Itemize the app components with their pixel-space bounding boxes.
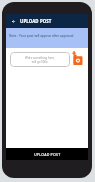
button[interactable]: Back	[7, 14, 20, 29]
staticText: UPLOAD POST	[34, 152, 61, 157]
button[interactable]: Add photo	[71, 50, 85, 66]
staticText: UPLOAD POST	[20, 18, 52, 24]
button[interactable]: UPLOAD POST	[6, 148, 88, 160]
button[interactable]: Write something here, will go 500x.	[10, 52, 70, 67]
staticText: Note : Your post will appear after appro…	[9, 34, 74, 38]
staticText: Write something here, will go 500x.	[25, 56, 55, 64]
